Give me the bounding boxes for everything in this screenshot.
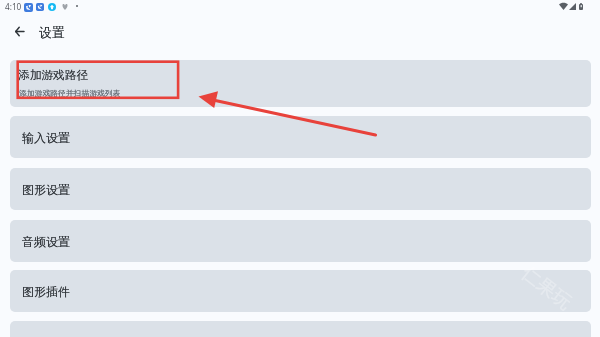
- staticText: 音频设置: [22, 234, 70, 249]
- button[interactable]: 图形设置: [10, 168, 591, 210]
- staticText: 图形设置: [22, 182, 70, 197]
- button[interactable]: 添加游戏路径: [10, 60, 591, 107]
- staticText: 输入设置: [22, 130, 70, 145]
- button[interactable]: Back: [7, 19, 31, 43]
- staticText: 设置: [39, 25, 65, 41]
- staticText: 设置: [39, 25, 65, 41]
- button[interactable]: 图形插件: [10, 270, 591, 312]
- button[interactable]: 输入设置: [10, 116, 591, 158]
- staticText: 图形设置: [22, 182, 70, 197]
- staticText: 图形插件: [22, 284, 70, 299]
- staticText: 添加游戏路径: [18, 68, 89, 83]
- staticText: 输入设置: [22, 130, 70, 145]
- staticText: 添加游戏路径并扫描游戏列表: [19, 88, 121, 98]
- staticText: 添加游戏路径并扫描游戏列表: [19, 88, 121, 98]
- staticText: 图形插件: [22, 284, 70, 299]
- staticText: 仁果玩: [517, 261, 576, 315]
- staticText: 添加游戏路径: [18, 68, 89, 83]
- staticText: 4:10: [5, 1, 22, 12]
- staticText: 音频设置: [22, 234, 70, 249]
- button[interactable]: 音频设置: [10, 220, 591, 262]
